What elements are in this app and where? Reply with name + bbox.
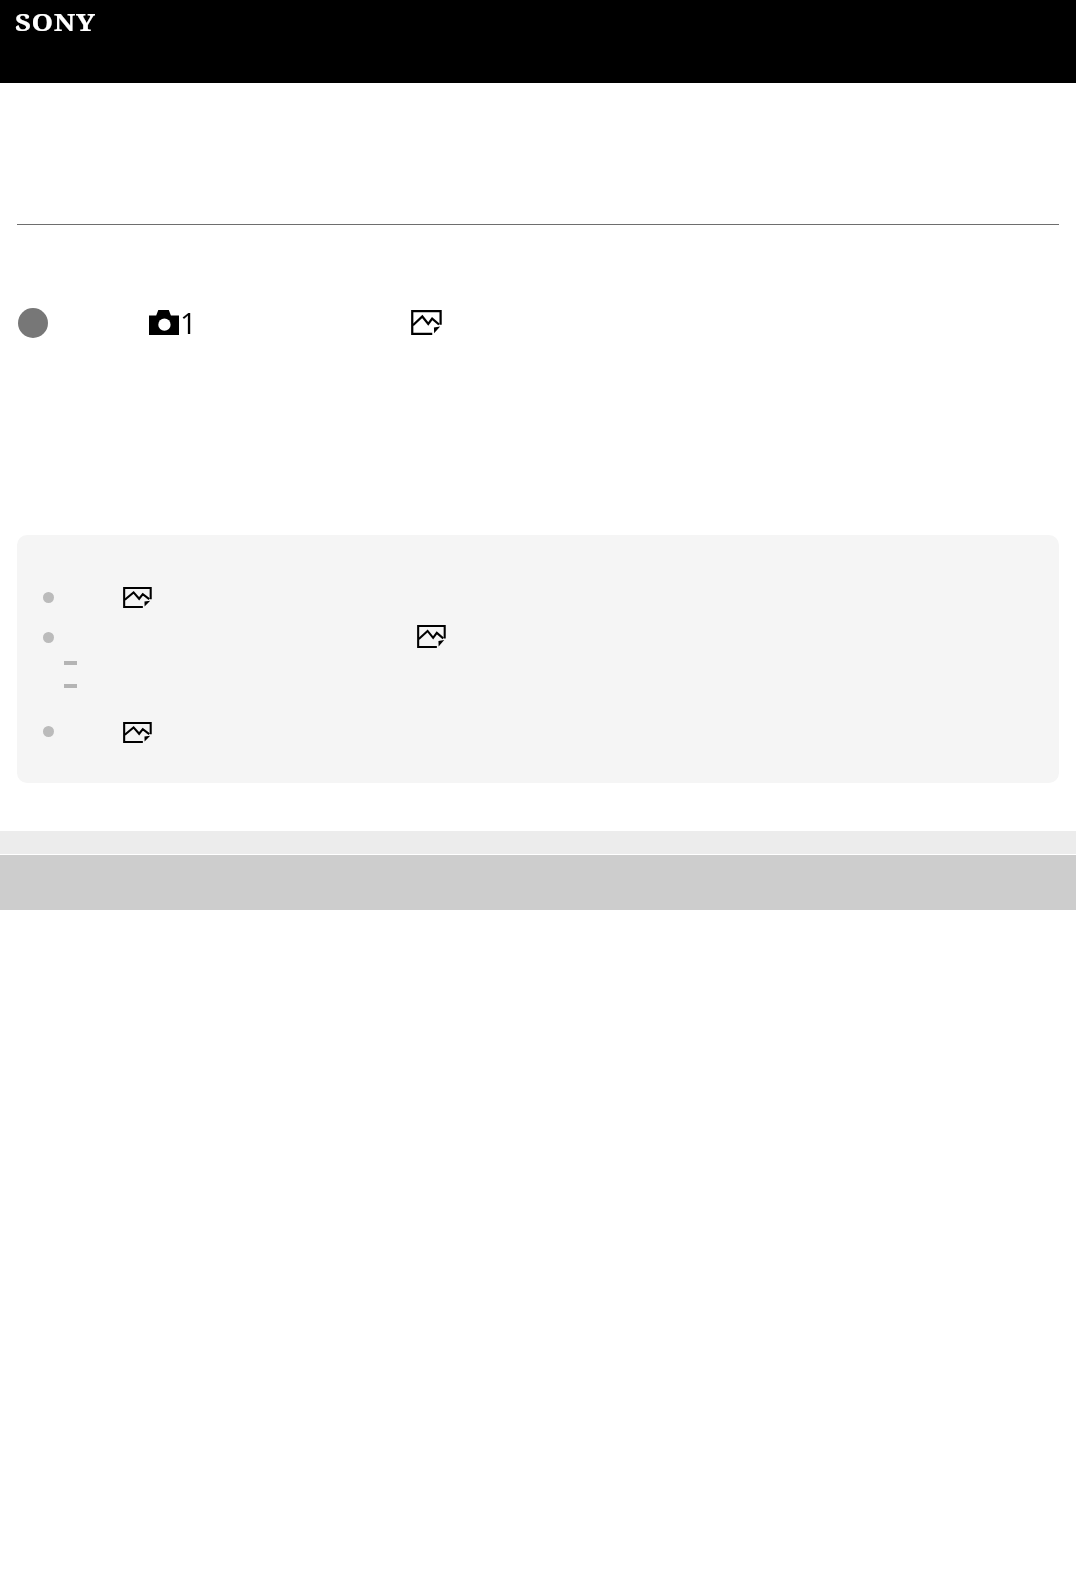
button[interactable]: Tip three	[35, 713, 180, 749]
button[interactable]: Image placeholder	[411, 310, 442, 335]
button[interactable]: Step marker	[18, 308, 48, 338]
staticText: SONY	[15, 6, 96, 37]
button[interactable]: Camera, step 1	[149, 303, 191, 335]
button[interactable]: Tip one	[35, 579, 180, 615]
button[interactable]: Tip two	[35, 619, 465, 655]
button[interactable]: Sony home	[0, 0, 1076, 83]
staticText: 1	[180, 303, 197, 335]
